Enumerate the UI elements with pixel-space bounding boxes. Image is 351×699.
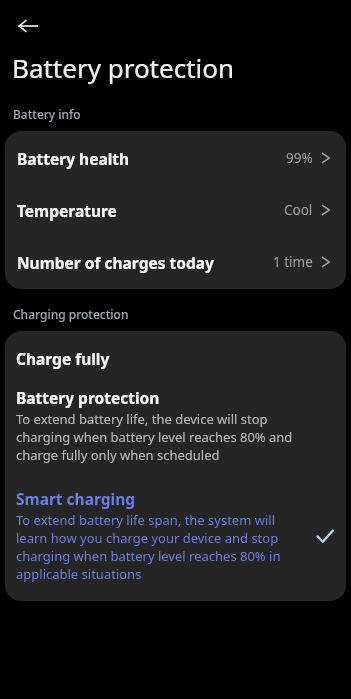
staticText: Battery protection <box>16 387 160 408</box>
staticText: 1 time <box>273 253 313 271</box>
staticText: Temperature <box>17 200 284 221</box>
button[interactable]: Number of charges today <box>5 236 346 288</box>
staticText: Charge fully <box>16 348 110 369</box>
button[interactable]: Smart charging <box>5 476 346 601</box>
button[interactable]: Temperature <box>5 184 346 236</box>
button[interactable]: Back <box>10 8 46 44</box>
staticText: 99% <box>286 149 313 167</box>
staticText: To extend battery life, the device will … <box>16 410 300 464</box>
staticText: Battery health <box>17 148 286 169</box>
staticText: Battery protection <box>12 50 235 85</box>
staticText: Battery info <box>13 106 81 122</box>
staticText: Charging protection <box>13 306 129 322</box>
staticText: Number of charges today <box>17 252 273 273</box>
staticText: Smart charging <box>16 488 136 509</box>
button[interactable]: Battery protection <box>5 385 346 476</box>
button[interactable]: Battery health <box>5 132 346 184</box>
staticText: To extend battery life span, the system … <box>16 511 308 583</box>
staticText: Cool <box>284 201 313 219</box>
button[interactable]: Charge fully <box>5 331 346 385</box>
